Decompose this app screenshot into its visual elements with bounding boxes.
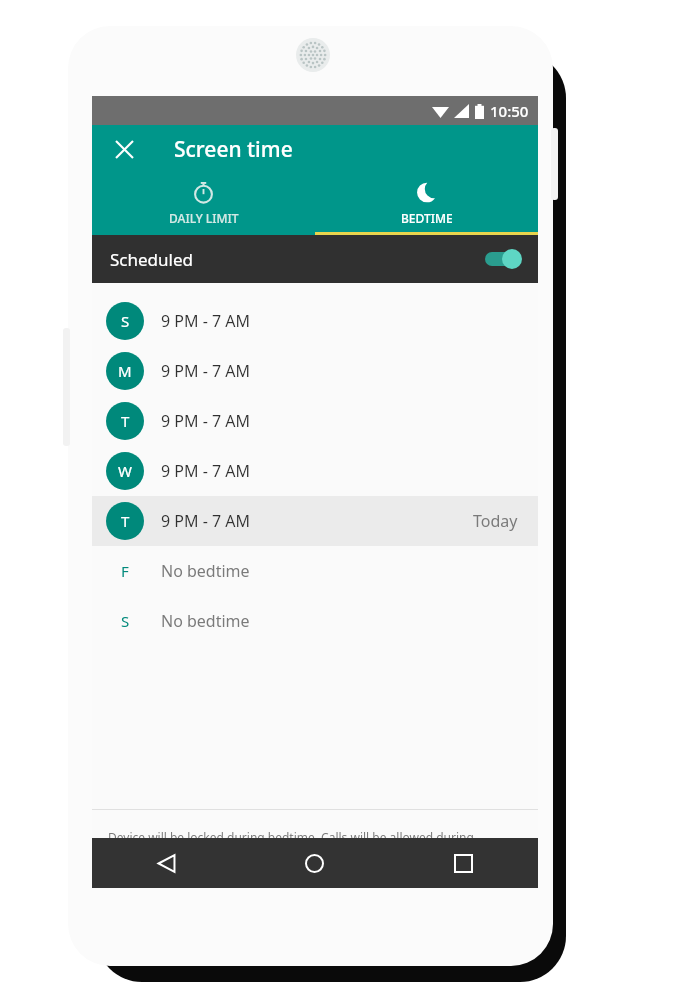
button[interactable]: F <box>92 546 538 596</box>
staticText: W <box>118 461 132 481</box>
button[interactable]: Close <box>108 133 140 165</box>
staticText: BEDTIME <box>401 210 453 226</box>
staticText: 10:50 <box>490 101 529 121</box>
button[interactable]: Recent apps <box>389 838 538 888</box>
staticText: 9 PM - 7 AM <box>161 510 251 532</box>
button[interactable]: Scheduled <box>92 235 538 283</box>
button[interactable]: BEDTIME <box>315 173 538 235</box>
staticText: F <box>121 561 129 581</box>
staticText: DAILY LIMIT <box>169 210 239 226</box>
staticText: S <box>121 311 130 331</box>
staticText: No bedtime <box>161 560 250 582</box>
button[interactable]: Back <box>92 838 240 888</box>
staticText: 9 PM - 7 AM <box>161 360 251 382</box>
staticText: 9 PM - 7 AM <box>161 410 251 432</box>
button[interactable]: M <box>92 346 538 396</box>
staticText: Today <box>473 510 518 532</box>
button[interactable]: DAILY LIMIT <box>92 173 315 235</box>
staticText: Scheduled <box>110 248 193 271</box>
button[interactable]: W <box>92 446 538 496</box>
staticText: 9 PM - 7 AM <box>161 460 251 482</box>
staticText: 9 PM - 7 AM <box>161 310 251 332</box>
staticText: S <box>121 611 130 631</box>
staticText: M <box>118 361 132 381</box>
button[interactable]: Home <box>240 838 389 888</box>
staticText: Device will be locked during bedtime. Ca… <box>108 829 474 845</box>
staticText: T <box>121 511 130 531</box>
staticText: Screen time <box>174 135 293 164</box>
button[interactable]: S <box>92 596 538 646</box>
button[interactable]: T <box>92 396 538 446</box>
button[interactable]: T <box>92 496 538 546</box>
staticText: T <box>121 411 130 431</box>
staticText: No bedtime <box>161 610 250 632</box>
button[interactable]: S <box>92 296 538 346</box>
